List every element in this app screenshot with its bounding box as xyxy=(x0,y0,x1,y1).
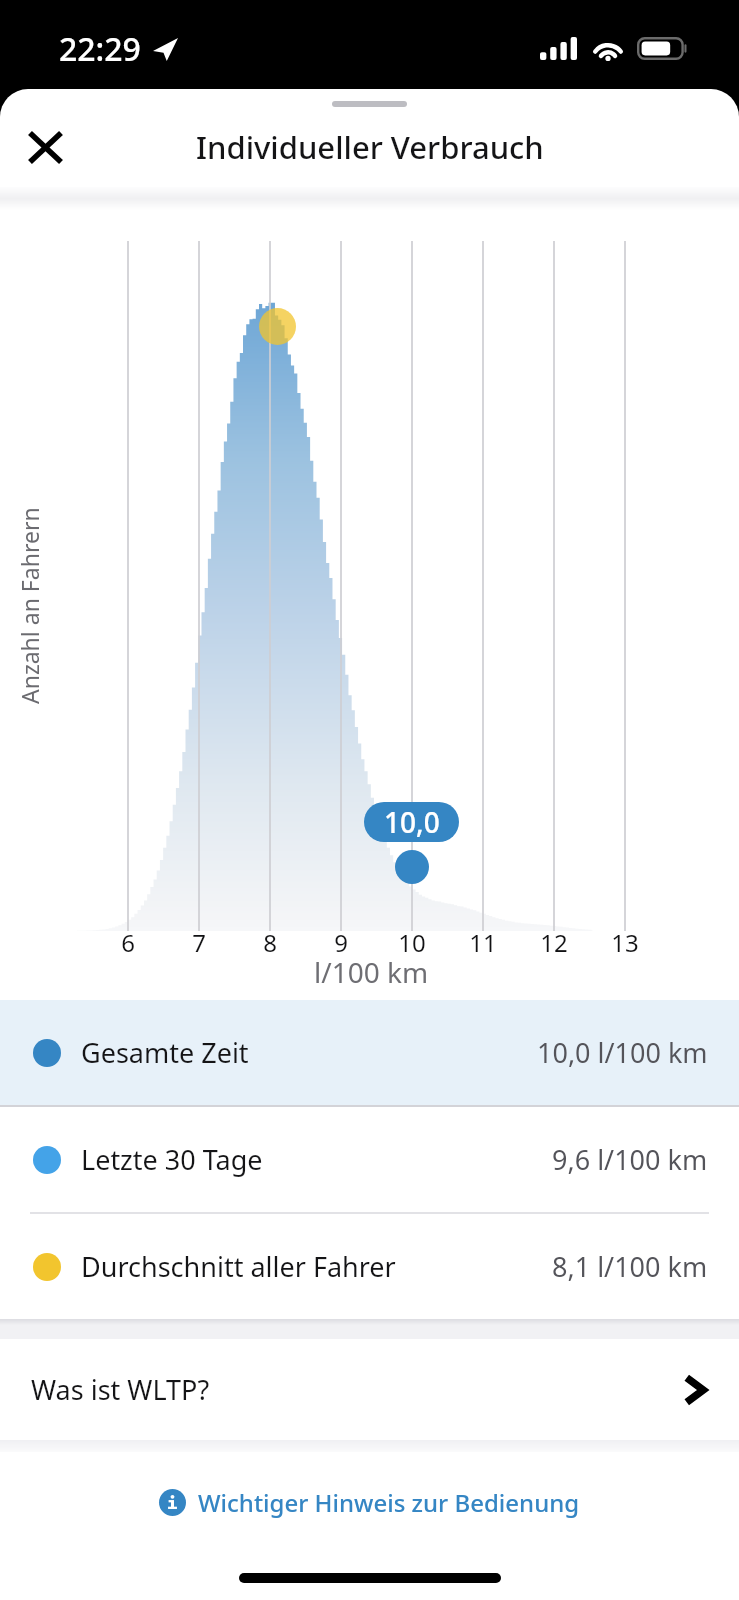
staticText: l/100 km xyxy=(314,953,429,991)
staticText: 8 xyxy=(240,926,300,959)
staticText: Durchschnitt aller Fahrer xyxy=(81,1248,396,1285)
button[interactable]: Schliessen xyxy=(17,119,73,175)
staticText: 10 xyxy=(382,926,442,959)
staticText: 11 xyxy=(453,926,513,959)
staticText: Wichtiger Hinweis zur Bedienung xyxy=(198,1486,580,1519)
button[interactable]: Durchschnitt aller Fahrer xyxy=(0,1214,739,1319)
staticText: Letzte 30 Tage xyxy=(81,1141,263,1178)
staticText: Gesamte Zeit xyxy=(81,1034,249,1071)
staticText: Was ist WLTP? xyxy=(31,1371,210,1408)
button[interactable]: Was ist WLTP? xyxy=(0,1339,739,1440)
button[interactable]: 10,0 xyxy=(364,802,459,842)
staticText: 12 xyxy=(524,926,584,959)
staticText: Individueller Verbrauch xyxy=(196,126,544,168)
button[interactable]: Letzte 30 Tage xyxy=(0,1107,739,1212)
staticText: Anzahl an Fahrern xyxy=(14,507,45,704)
staticText: 6 xyxy=(98,926,158,959)
button[interactable]: Wichtiger Hinweis zur Bedienung xyxy=(149,1480,590,1525)
button[interactable]: Gesamte Zeit xyxy=(0,1000,739,1105)
staticText: 7 xyxy=(169,926,229,959)
staticText: 8,1 l/100 km xyxy=(552,1248,708,1285)
staticText: 13 xyxy=(595,926,655,959)
staticText: 9,6 l/100 km xyxy=(552,1141,708,1178)
staticText: 10,0 l/100 km xyxy=(537,1034,708,1071)
staticText: 9 xyxy=(311,926,371,959)
staticText: 22:29 xyxy=(59,27,141,71)
staticText: 10,0 xyxy=(384,803,440,841)
